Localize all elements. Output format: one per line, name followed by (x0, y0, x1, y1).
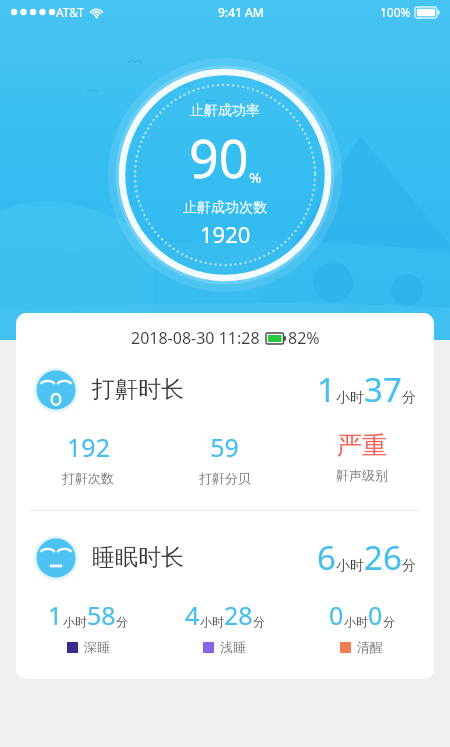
staticText: 清醒 (357, 639, 383, 655)
staticText: 9:41 AM (218, 4, 264, 20)
staticText: 82% (288, 327, 320, 349)
staticText: 37 (364, 367, 402, 412)
staticText: 小时 (63, 614, 87, 629)
staticText: 0 (329, 598, 344, 632)
staticText: 鼾声级别 (336, 467, 388, 483)
staticText: 严重 (337, 430, 387, 461)
staticText: 打鼾时长 (92, 375, 184, 404)
staticText: 28 (224, 598, 253, 632)
staticText: 100% (380, 4, 411, 20)
staticText: 0 (368, 598, 383, 632)
button[interactable]: 严重 (293, 428, 430, 485)
staticText: 分 (116, 614, 128, 629)
staticText: 1 (317, 367, 336, 412)
button[interactable]: 打鼾时长 (16, 367, 434, 412)
staticText: 打鼾次数 (62, 470, 114, 486)
staticText: 59 (210, 430, 239, 464)
staticText: 小时 (344, 614, 368, 629)
staticText: 6 (317, 535, 336, 580)
button[interactable]: 1 (20, 598, 156, 655)
staticText: 分 (402, 557, 416, 575)
button[interactable]: 192 (20, 428, 156, 488)
staticText: 小时 (200, 614, 224, 629)
staticText: 分 (253, 614, 265, 629)
staticText: 26 (364, 535, 402, 580)
staticText: 止鼾成功率 (190, 102, 260, 120)
staticText: % (249, 167, 262, 187)
staticText: 58 (87, 598, 116, 632)
staticText: 小时 (336, 557, 364, 575)
staticText: AT&T (56, 4, 84, 20)
staticText: 深睡 (84, 639, 110, 655)
staticText: 1920 (200, 219, 251, 249)
button[interactable]: 4 (156, 598, 293, 655)
button[interactable]: 睡眠时长 (16, 535, 434, 580)
staticText: 192 (67, 430, 110, 464)
staticText: 分 (402, 389, 416, 407)
staticText: 2018-08-30 11:28 (131, 327, 260, 349)
staticText: 1 (48, 598, 63, 632)
staticText: 分 (383, 614, 395, 629)
button[interactable]: 止鼾成功率 90% (113, 63, 337, 287)
staticText: 小时 (336, 389, 364, 407)
staticText: 90 (189, 122, 249, 193)
staticText: 浅睡 (220, 639, 246, 655)
staticText: 打鼾分贝 (199, 470, 251, 486)
button[interactable]: 59 (156, 428, 293, 488)
staticText: 睡眠时长 (92, 543, 184, 572)
button[interactable]: 0 (293, 598, 430, 655)
staticText: 止鼾成功次数 (183, 199, 267, 217)
staticText: 4 (185, 598, 200, 632)
